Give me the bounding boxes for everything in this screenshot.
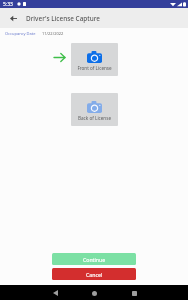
button[interactable]: Recent apps	[128, 287, 140, 299]
button[interactable]: Back of License	[71, 93, 118, 126]
staticText: Driver's License Capture	[26, 14, 100, 23]
button[interactable]: Cancel	[52, 268, 136, 280]
staticText: 11/22/2022	[42, 31, 64, 36]
button[interactable]: Home	[88, 287, 100, 299]
staticText: 5:33	[3, 1, 13, 8]
staticText: Occupancy Date	[5, 31, 36, 36]
staticText: Continue	[83, 256, 106, 263]
other: Next step	[54, 53, 65, 62]
button[interactable]: Back	[49, 287, 61, 299]
button[interactable]: Back	[4, 9, 23, 28]
staticText: Cancel	[86, 271, 103, 278]
staticText: Back of License	[78, 115, 111, 121]
button[interactable]: Continue	[52, 253, 136, 265]
staticText: Front of License	[77, 65, 112, 71]
button[interactable]: Front of License	[71, 43, 118, 76]
